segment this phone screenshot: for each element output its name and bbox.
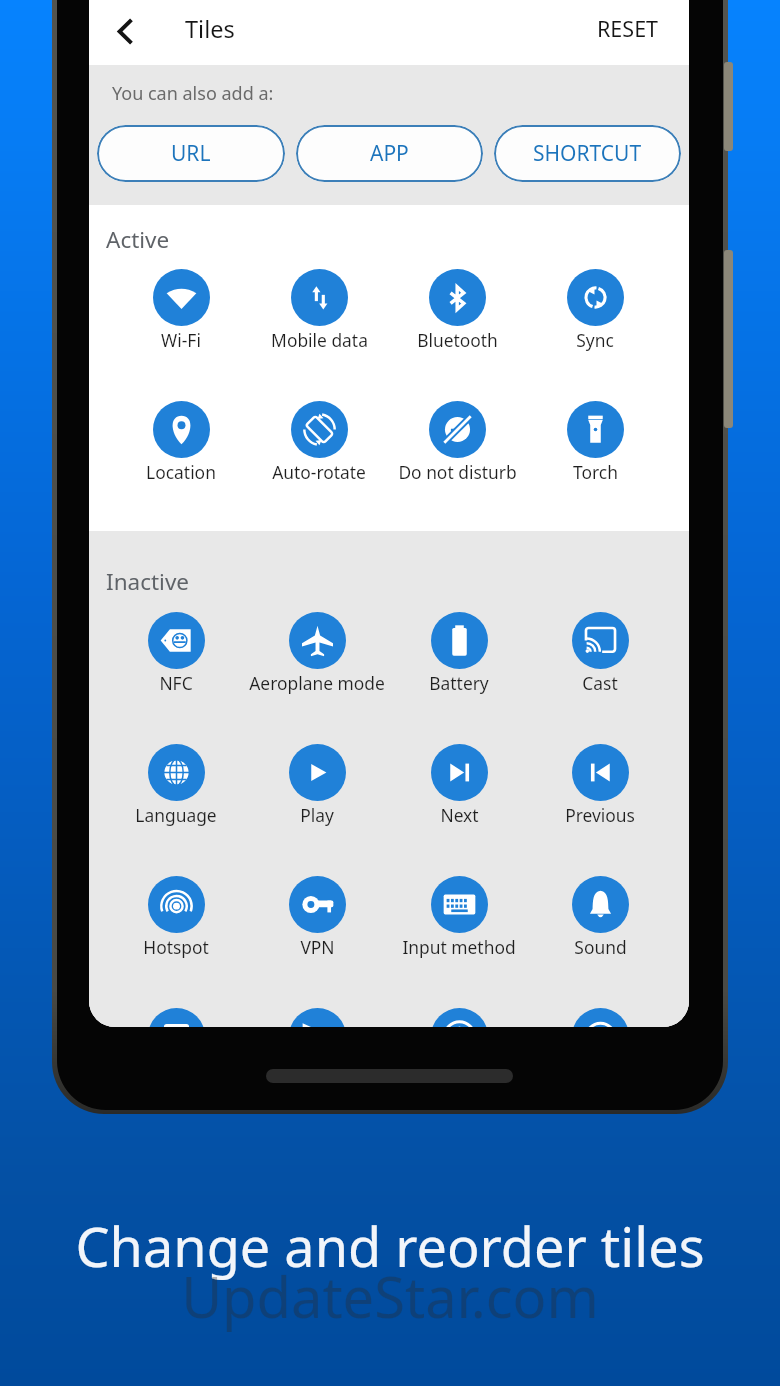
staticText: Inactive — [106, 566, 190, 597]
staticText: Next — [440, 803, 479, 827]
button[interactable]: Torch — [515, 401, 675, 484]
staticText: Bluetooth — [417, 328, 498, 352]
button[interactable]: RESET — [576, 2, 679, 54]
staticText: Play — [300, 803, 334, 827]
button[interactable]: Sync — [515, 269, 675, 352]
button[interactable]: Battery — [379, 612, 539, 695]
staticText: Location — [146, 460, 216, 484]
staticText: Aeroplane mode — [249, 671, 385, 695]
staticText: Wi-Fi — [161, 328, 201, 352]
button[interactable]: Aeroplane mode — [237, 612, 397, 695]
button[interactable]: APP — [296, 125, 483, 182]
staticText: Language — [135, 803, 217, 827]
staticText: Input method — [402, 935, 516, 959]
button[interactable]: VPN — [237, 876, 397, 959]
button[interactable]: NFC — [96, 612, 256, 695]
button[interactable]: Timer — [520, 1008, 680, 1027]
button[interactable]: Cast — [520, 612, 680, 695]
staticText: NFC — [159, 671, 193, 695]
button[interactable]: Mobile data — [239, 269, 399, 352]
button[interactable]: Screenshot — [96, 1008, 256, 1027]
staticText: Do not disturb — [398, 460, 517, 484]
staticText: Cast — [582, 671, 618, 695]
button[interactable]: Input method — [379, 876, 539, 959]
button[interactable]: Sound — [520, 876, 680, 959]
button[interactable]: Bluetooth — [377, 269, 537, 352]
button[interactable]: Info — [379, 1008, 539, 1027]
button[interactable]: Previous — [520, 744, 680, 827]
button[interactable]: Back — [99, 5, 151, 57]
button[interactable]: Wi-Fi — [101, 269, 261, 352]
button[interactable]: Auto-rotate — [239, 401, 399, 484]
staticText: Change and reorder tiles — [0, 1209, 780, 1283]
staticText: VPN — [300, 935, 335, 959]
staticText: Auto-rotate — [272, 460, 366, 484]
staticText: You can also add a: — [112, 81, 274, 106]
button[interactable]: URL — [97, 125, 285, 182]
button[interactable]: Send — [237, 1008, 397, 1027]
staticText: Battery — [429, 671, 489, 695]
staticText: Hotspot — [143, 935, 209, 959]
button[interactable]: Play — [237, 744, 397, 827]
staticText: Mobile data — [271, 328, 368, 352]
button[interactable]: SHORTCUT — [494, 125, 681, 182]
button[interactable]: Hotspot — [96, 876, 256, 959]
button[interactable]: Next — [379, 744, 539, 827]
staticText: Sync — [576, 328, 614, 352]
staticText: APP — [370, 139, 409, 168]
staticText: RESET — [597, 14, 659, 43]
staticText: SHORTCUT — [533, 139, 642, 168]
staticText: URL — [171, 139, 211, 168]
staticText: UpdateStar.com — [0, 1258, 780, 1334]
staticText: Active — [106, 224, 170, 255]
staticText: Torch — [573, 460, 618, 484]
staticText: Tiles — [185, 13, 235, 45]
staticText: Sound — [574, 935, 627, 959]
staticText: Previous — [565, 803, 635, 827]
button[interactable]: Do not disturb — [377, 401, 537, 484]
button[interactable]: Location — [101, 401, 261, 484]
button[interactable]: Language — [96, 744, 256, 827]
